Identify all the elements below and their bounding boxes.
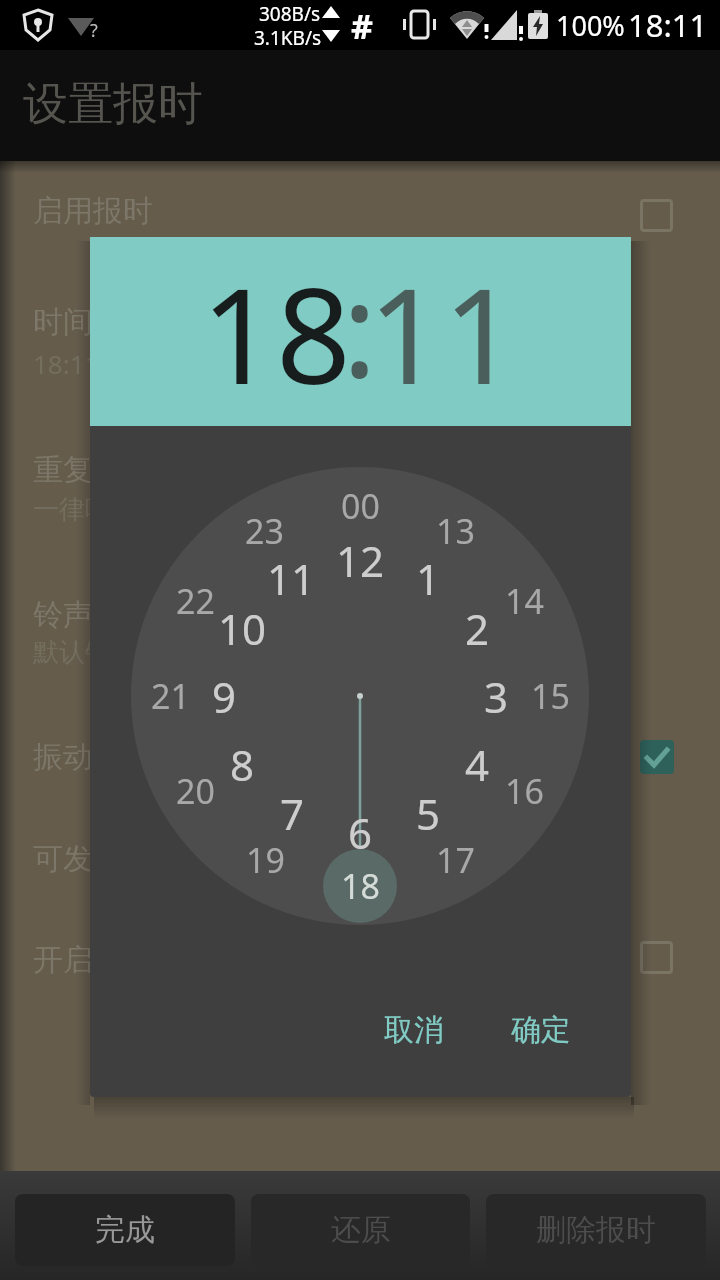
staticText: 一律响铃: [33, 493, 137, 526]
button[interactable]: [640, 199, 673, 232]
button[interactable]: [0, 555, 720, 675]
button[interactable]: [640, 740, 674, 774]
button[interactable]: [0, 814, 720, 904]
button[interactable]: [0, 915, 720, 1005]
staticText: 12: [336, 532, 385, 589]
staticText: 取消: [384, 1011, 444, 1049]
staticText: 振动: [33, 738, 93, 776]
staticText: 3: [484, 668, 509, 725]
staticText: 重复: [33, 451, 93, 489]
staticText: 3.1KB/s: [254, 25, 322, 49]
staticText: 18:11: [33, 346, 100, 381]
staticText: :: [342, 237, 378, 415]
staticText: 22: [176, 578, 215, 624]
staticText: 2: [465, 600, 490, 657]
button[interactable]: [0, 166, 720, 256]
staticText: 15: [531, 673, 570, 719]
button[interactable]: 确定: [476, 995, 606, 1065]
button[interactable]: 删除报时: [486, 1194, 706, 1266]
staticText: 完成: [95, 1211, 155, 1249]
staticText: 开启勿扰模式: [33, 941, 213, 979]
staticText: 删除报时: [536, 1211, 656, 1249]
button[interactable]: 取消: [349, 995, 479, 1065]
staticText: #: [351, 3, 373, 47]
staticText: 14: [505, 578, 544, 624]
staticText: 6: [348, 804, 373, 861]
staticText: 4: [465, 736, 490, 793]
button[interactable]: [0, 262, 720, 382]
button[interactable]: [0, 712, 720, 802]
staticText: 11: [267, 550, 316, 607]
button[interactable]: 完成: [15, 1194, 235, 1266]
staticText: 17: [436, 837, 475, 883]
staticText: 19: [246, 837, 285, 883]
staticText: 18: [201, 244, 351, 422]
staticText: 100%: [556, 7, 625, 44]
staticText: 10: [218, 600, 267, 657]
staticText: 23: [245, 508, 284, 554]
staticText: 确定: [511, 1011, 571, 1049]
staticText: 启用报时: [33, 192, 153, 230]
staticText: 设置报时: [23, 76, 203, 133]
staticText: 20: [176, 768, 215, 814]
staticText: 铃声: [33, 596, 93, 634]
staticText: 16: [505, 768, 544, 814]
staticText: 308B/s: [259, 1, 321, 25]
staticText: 1: [416, 550, 441, 607]
staticText: 默认铃声: [33, 636, 137, 669]
button[interactable]: [0, 410, 720, 530]
staticText: 00: [341, 483, 380, 529]
staticText: 时间: [33, 303, 93, 341]
staticText: 18: [341, 863, 380, 909]
staticText: 5: [416, 785, 441, 842]
staticText: 8: [230, 736, 255, 793]
staticText: 21: [151, 673, 190, 719]
button[interactable]: 还原: [251, 1194, 470, 1266]
staticText: 7: [280, 785, 305, 842]
button[interactable]: [640, 941, 673, 974]
staticText: 11: [368, 244, 518, 422]
staticText: 还原: [331, 1211, 391, 1249]
staticText: ?: [90, 18, 98, 43]
staticText: 9: [212, 668, 237, 725]
staticText: 可发送通知: [33, 840, 183, 878]
button[interactable]: [323, 849, 397, 923]
staticText: 13: [436, 508, 475, 554]
staticText: 18:11: [628, 4, 708, 46]
